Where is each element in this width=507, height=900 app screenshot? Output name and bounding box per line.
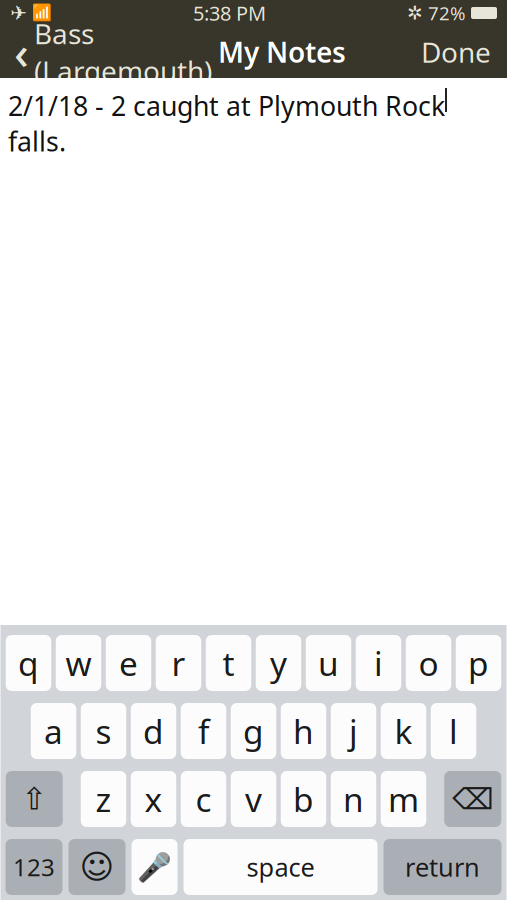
staticText: g: [243, 709, 264, 753]
button[interactable]: p: [456, 635, 501, 691]
button[interactable]: j: [331, 703, 376, 759]
staticText: a: [44, 709, 63, 753]
button[interactable]: m: [381, 771, 426, 827]
staticText: y: [270, 641, 287, 685]
button[interactable]: Delete: [444, 771, 501, 827]
staticText: l: [449, 709, 458, 753]
button[interactable]: ‹: [0, 26, 218, 78]
staticText: m: [388, 777, 419, 821]
staticText: o: [418, 641, 438, 685]
staticText: ‹: [14, 22, 29, 82]
button[interactable]: return: [383, 839, 501, 895]
button[interactable]: t: [206, 635, 251, 691]
button[interactable]: z: [81, 771, 126, 827]
staticText: My Notes: [218, 33, 346, 71]
staticText: z: [95, 777, 111, 821]
staticText: 📶: [32, 4, 52, 22]
staticText: v: [245, 777, 262, 821]
button[interactable]: a: [31, 703, 76, 759]
staticText: w: [65, 641, 91, 685]
staticText: q: [18, 641, 39, 685]
staticText: return: [405, 850, 480, 884]
staticText: ⇧: [21, 782, 47, 816]
button[interactable]: k: [381, 703, 426, 759]
staticText: k: [394, 709, 412, 753]
staticText: Bass (Largemouth): [34, 15, 212, 89]
staticText: 123: [13, 851, 55, 883]
button[interactable]: g: [231, 703, 276, 759]
staticText: Done: [421, 33, 491, 71]
staticText: e: [119, 641, 138, 685]
staticText: n: [343, 777, 364, 821]
button[interactable]: s: [81, 703, 126, 759]
button[interactable]: e: [106, 635, 151, 691]
button[interactable]: y: [256, 635, 301, 691]
staticText: ⌫: [452, 782, 493, 816]
button[interactable]: l: [431, 703, 476, 759]
button[interactable]: q: [6, 635, 51, 691]
staticText: j: [349, 709, 358, 753]
staticText: u: [318, 641, 339, 685]
staticText: b: [293, 777, 314, 821]
button[interactable]: 123: [5, 839, 62, 895]
button[interactable]: space: [183, 839, 377, 895]
staticText: 🎤: [137, 851, 172, 883]
button[interactable]: Done: [405, 26, 507, 78]
staticText: x: [144, 777, 162, 821]
staticText: s: [95, 709, 111, 753]
button[interactable]: c: [181, 771, 226, 827]
staticText: space: [246, 850, 314, 884]
button[interactable]: Shift: [6, 771, 63, 827]
staticText: r: [171, 641, 185, 685]
button[interactable]: r: [156, 635, 201, 691]
staticText: ✲: [407, 2, 423, 24]
button[interactable]: n: [331, 771, 376, 827]
staticText: 5:38 PM: [193, 0, 266, 26]
button[interactable]: d: [131, 703, 176, 759]
button[interactable]: Dictation: [131, 839, 177, 895]
button[interactable]: o: [406, 635, 451, 691]
staticText: t: [222, 641, 234, 685]
button[interactable]: Emoji: [68, 839, 125, 895]
staticText: f: [198, 709, 209, 753]
button[interactable]: b: [281, 771, 326, 827]
staticText: i: [374, 641, 383, 685]
staticText: h: [293, 709, 314, 753]
staticText: ☺: [79, 848, 114, 886]
button[interactable]: h: [281, 703, 326, 759]
button[interactable]: v: [231, 771, 276, 827]
staticText: d: [143, 709, 164, 753]
staticText: 2/1/18 - 2 caught at Plymouth Rock falls…: [8, 88, 445, 159]
staticText: 72%: [423, 1, 471, 25]
button[interactable]: w: [56, 635, 101, 691]
button[interactable]: x: [131, 771, 176, 827]
button[interactable]: u: [306, 635, 351, 691]
button[interactable]: f: [181, 703, 226, 759]
staticText: ✈: [10, 2, 27, 24]
staticText: c: [195, 777, 211, 821]
button[interactable]: i: [356, 635, 401, 691]
staticText: p: [468, 641, 489, 685]
